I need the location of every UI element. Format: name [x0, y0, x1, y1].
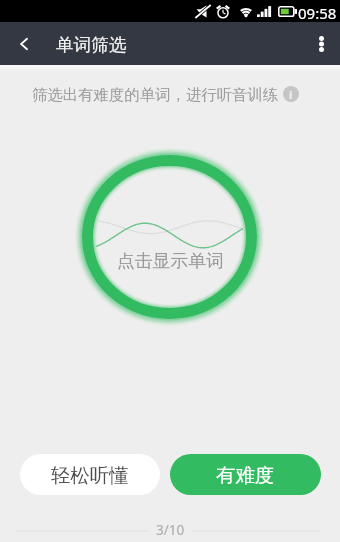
button[interactable]: 有难度 [170, 454, 321, 495]
button[interactable]: More options [303, 22, 340, 65]
button[interactable]: 轻松听懂 [20, 454, 160, 495]
staticText: 轻松听懂 [51, 463, 129, 487]
staticText: 有难度 [216, 463, 275, 487]
staticText: 09:58 [298, 3, 337, 23]
staticText: 3/10 [156, 521, 185, 539]
button[interactable]: Back [0, 22, 48, 65]
staticText: 单词筛选 [56, 34, 127, 56]
button[interactable]: Info [283, 86, 299, 102]
staticText: 筛选出有难度的单词，进行听音训练 [32, 85, 279, 104]
button[interactable]: 点击显示单词 [75, 148, 264, 326]
staticText: 点击显示单词 [117, 250, 224, 272]
staticText: i [289, 87, 293, 102]
